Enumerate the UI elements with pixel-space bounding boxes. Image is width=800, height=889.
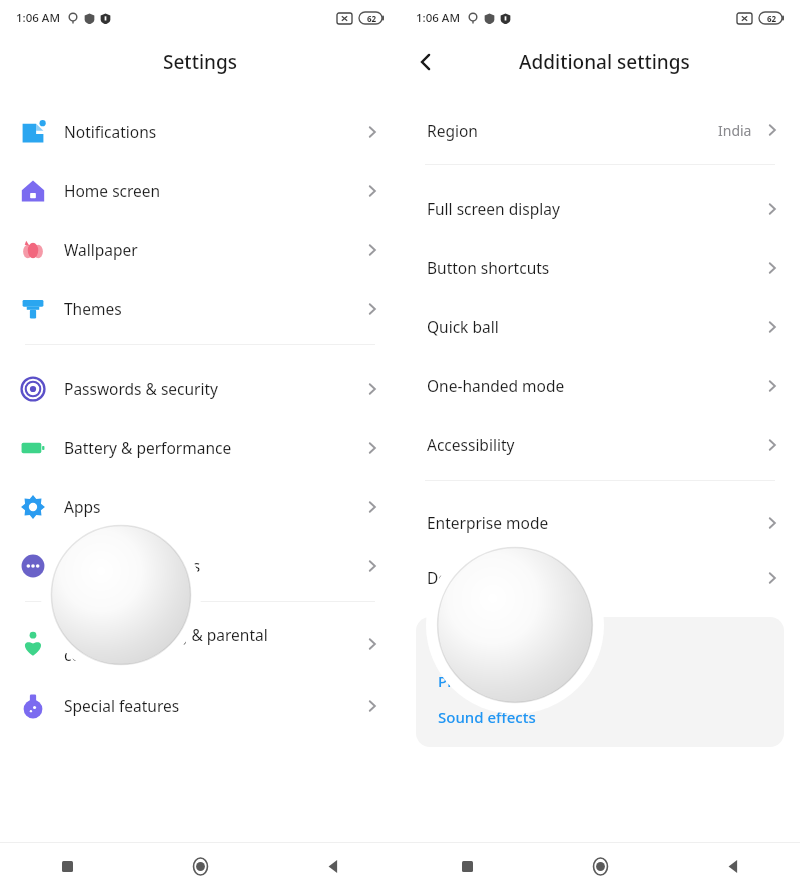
button[interactable]: Notifications — [0, 102, 400, 161]
button[interactable]: Apps — [0, 477, 400, 536]
button[interactable]: Passwords & security — [0, 359, 400, 418]
button[interactable]: Home screen — [0, 161, 400, 220]
button[interactable]: Privacy — [438, 671, 490, 691]
staticText: 1:06 AM — [16, 10, 60, 26]
staticText: Region — [427, 120, 718, 141]
staticText: India — [718, 121, 752, 140]
button[interactable]: Home — [134, 843, 267, 889]
staticText: 62 — [367, 13, 377, 24]
staticText: Home screen — [64, 180, 364, 201]
staticText: Full screen display — [427, 198, 764, 219]
button[interactable]: Additional settings — [0, 536, 400, 595]
button[interactable]: Region — [400, 102, 800, 158]
staticText: Battery & performance — [64, 437, 364, 458]
button[interactable]: Button shortcuts — [400, 238, 800, 297]
button[interactable]: Home — [534, 843, 667, 889]
button[interactable]: Accessibility — [400, 415, 800, 474]
staticText: Notifications — [64, 121, 364, 142]
staticText: Enterprise mode — [427, 512, 764, 533]
staticText: Wallpaper — [64, 239, 364, 260]
staticText: 62 — [767, 13, 777, 24]
button[interactable]: Recents — [400, 843, 534, 889]
button[interactable]: Themes — [0, 279, 400, 338]
staticText: Accessibility — [427, 434, 764, 455]
staticText: Additional settings — [519, 49, 690, 75]
button[interactable]: Sound effects — [438, 707, 536, 727]
staticText: Developer options — [427, 567, 764, 588]
staticText: Button shortcuts — [427, 257, 764, 278]
button[interactable]: Recents — [0, 843, 134, 889]
button[interactable]: Battery & performance — [0, 418, 400, 477]
staticText: Need more settings? — [438, 635, 579, 655]
button[interactable]: Digital Wellbeing & parental controls — [0, 612, 400, 676]
staticText: Settings — [163, 49, 237, 75]
staticText: Apps — [64, 496, 364, 517]
button[interactable]: Wallpaper — [0, 220, 400, 279]
staticText: Digital Wellbeing & parental controls — [64, 624, 364, 665]
staticText: Themes — [64, 298, 364, 319]
button[interactable]: One-handed mode — [400, 356, 800, 415]
staticText: Additional settings — [64, 555, 364, 576]
button[interactable]: Full screen display — [400, 179, 800, 238]
staticText: Quick ball — [427, 316, 764, 337]
staticText: 1:06 AM — [416, 10, 460, 26]
button[interactable]: Developer options — [400, 550, 800, 605]
staticText: Passwords & security — [64, 378, 364, 399]
button[interactable]: Back — [667, 843, 800, 889]
button[interactable]: Back — [267, 843, 400, 889]
button[interactable]: Need more settings? — [416, 617, 784, 747]
button[interactable]: Quick ball — [400, 297, 800, 356]
staticText: Special features — [64, 695, 364, 716]
button[interactable]: Back — [400, 36, 452, 88]
button[interactable]: Special features — [0, 676, 400, 735]
button[interactable]: Enterprise mode — [400, 495, 800, 550]
staticText: One-handed mode — [427, 375, 764, 396]
